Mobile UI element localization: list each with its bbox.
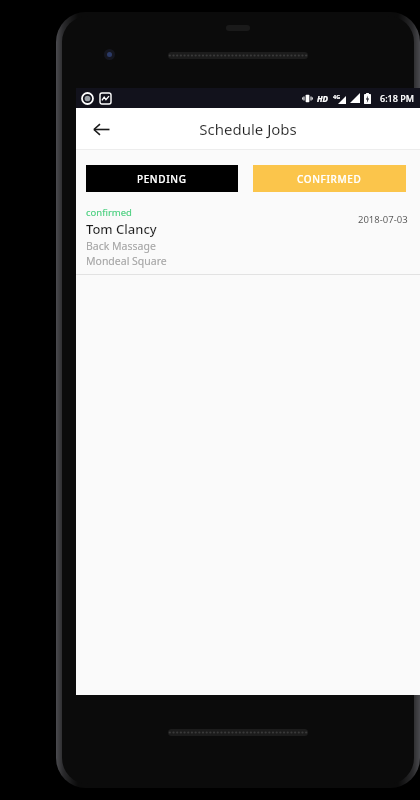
staticText: Mondeal Square	[86, 254, 167, 268]
staticText: Back Massage	[86, 239, 156, 253]
button[interactable]: Back	[84, 112, 118, 146]
staticText: 6:18 PM	[380, 92, 414, 104]
button[interactable]: CONFIRMED	[253, 165, 406, 192]
button[interactable]: PENDING	[86, 165, 238, 192]
staticText: confirmed	[86, 206, 132, 219]
staticText: Tom Clancy	[86, 220, 157, 238]
staticText: 4G	[333, 93, 341, 100]
staticText: PENDING	[137, 172, 187, 186]
button[interactable]: confirmed	[76, 202, 420, 275]
staticText: Schedule Jobs	[199, 119, 297, 139]
staticText: 2018-07-03	[358, 213, 408, 226]
staticText: HD	[317, 93, 329, 104]
staticText: CONFIRMED	[297, 172, 362, 186]
